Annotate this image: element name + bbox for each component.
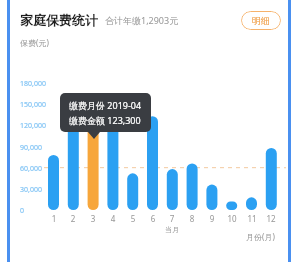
staticText: 60,000 xyxy=(20,164,42,174)
staticText: 11 xyxy=(243,213,261,224)
staticText: 8 xyxy=(183,213,201,224)
button[interactable]: 缴费详情 xyxy=(60,93,151,132)
staticText: 缴费金额 123,300 xyxy=(69,114,141,126)
staticText: 保费(元) xyxy=(20,37,49,48)
staticText: 明细 xyxy=(252,15,270,26)
staticText: 月份(月) xyxy=(246,231,275,242)
button[interactable]: 明细 xyxy=(241,11,281,30)
staticText: 150,000 xyxy=(20,100,46,110)
staticText: 12 xyxy=(262,213,280,224)
staticText: 90,000 xyxy=(20,143,42,153)
staticText: 0 xyxy=(20,206,25,216)
staticText: 7 xyxy=(163,213,181,224)
staticText: 5 xyxy=(124,213,142,224)
staticText: 180,000 xyxy=(20,79,46,89)
staticText: 10 xyxy=(223,213,241,224)
staticText: 30,000 xyxy=(20,185,42,195)
staticText: 家庭保费统计 xyxy=(20,12,98,28)
staticText: 2 xyxy=(64,213,82,224)
staticText: 当月 xyxy=(165,225,179,234)
staticText: 6 xyxy=(144,213,162,224)
staticText: 合计年缴1,2903元 xyxy=(105,14,179,26)
staticText: 3 xyxy=(84,213,102,224)
staticText: 9 xyxy=(203,213,221,224)
staticText: 4 xyxy=(104,213,122,224)
staticText: 1 xyxy=(45,213,63,224)
staticText: 120,000 xyxy=(20,121,46,131)
staticText: 缴费月份 2019-04 xyxy=(69,99,142,111)
